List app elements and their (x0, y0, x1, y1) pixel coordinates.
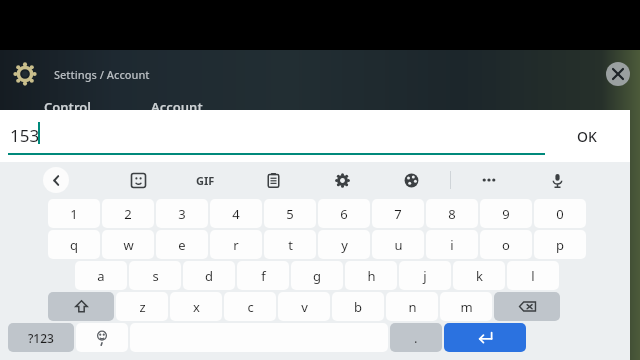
button[interactable]: g (291, 261, 343, 290)
staticText: Control (44, 98, 91, 116)
staticText: i (450, 236, 454, 254)
staticText: n (408, 298, 417, 316)
button[interactable]: y (318, 230, 370, 259)
button[interactable]: h (345, 261, 397, 290)
button[interactable]: m (440, 292, 492, 321)
button[interactable]: j (399, 261, 451, 290)
button[interactable]: n (386, 292, 438, 321)
button[interactable]: z (116, 292, 168, 321)
staticText: GIF (196, 173, 215, 188)
staticText: j (423, 267, 427, 285)
button[interactable]: Enter (444, 323, 526, 352)
button[interactable]: Settings (325, 163, 359, 197)
staticText: u (394, 236, 403, 254)
button[interactable]: 1 (48, 199, 100, 228)
staticText: x (193, 298, 200, 316)
staticText: r (233, 236, 239, 254)
staticText: q (70, 236, 78, 254)
button[interactable]: e (156, 230, 208, 259)
button[interactable]: 3 (156, 199, 208, 228)
staticText: y (341, 236, 348, 254)
staticText: 4 (232, 205, 240, 223)
button[interactable]: 2 (102, 199, 154, 228)
staticText: Settings / Account (54, 67, 150, 82)
staticText: 8 (448, 205, 456, 223)
button[interactable]: s (129, 261, 181, 290)
staticText: p (556, 236, 564, 254)
button[interactable]: o (480, 230, 532, 259)
button[interactable]: Close (606, 62, 630, 86)
staticText: b (354, 298, 362, 316)
staticText: e (178, 236, 186, 254)
staticText: h (367, 267, 376, 285)
staticText: ?123 (28, 330, 54, 346)
staticText: o (502, 236, 510, 254)
button[interactable]: Themes (394, 163, 428, 197)
staticText: w (123, 236, 134, 254)
staticText: m (460, 298, 473, 316)
staticText: 9 (502, 205, 510, 223)
staticText: 3 (178, 205, 186, 223)
button[interactable]: x (170, 292, 222, 321)
staticText: l (531, 267, 535, 285)
staticText: d (205, 267, 213, 285)
button[interactable]: p (534, 230, 586, 259)
staticText: 0 (556, 205, 564, 223)
button[interactable]: 8 (426, 199, 478, 228)
staticText: 6 (340, 205, 348, 223)
button[interactable]: c (224, 292, 276, 321)
button[interactable]: GIF (188, 163, 222, 197)
button[interactable]: Emoji (76, 323, 128, 352)
button[interactable]: i (426, 230, 478, 259)
button[interactable]: d (183, 261, 235, 290)
button[interactable]: Clipboard (256, 163, 290, 197)
button[interactable]: Symbols (8, 323, 74, 352)
staticText: c (247, 298, 254, 316)
button[interactable]: 6 (318, 199, 370, 228)
button[interactable]: Voice input (540, 163, 574, 197)
staticText: v (301, 298, 308, 316)
button[interactable]: OK (558, 116, 616, 156)
staticText: Account (151, 98, 203, 116)
button[interactable]: q (48, 230, 100, 259)
button[interactable]: 0 (534, 199, 586, 228)
button[interactable]: More options (472, 163, 506, 197)
button[interactable]: Stickers (121, 163, 155, 197)
button[interactable]: 7 (372, 199, 424, 228)
staticText: a (97, 267, 105, 285)
button[interactable]: 4 (210, 199, 262, 228)
staticText: 153 (10, 124, 40, 147)
staticText: 5 (286, 205, 294, 223)
button[interactable]: v (278, 292, 330, 321)
staticText: f (261, 267, 266, 285)
button[interactable]: k (453, 261, 505, 290)
staticText: t (288, 236, 293, 254)
button[interactable]: t (264, 230, 316, 259)
staticText: z (139, 298, 146, 316)
button[interactable]: l (507, 261, 559, 290)
staticText: g (313, 267, 321, 285)
button[interactable]: r (210, 230, 262, 259)
staticText: k (476, 267, 483, 285)
button[interactable]: u (372, 230, 424, 259)
staticText: . (414, 329, 418, 347)
staticText: 7 (394, 205, 402, 223)
button[interactable]: f (237, 261, 289, 290)
staticText: 2 (124, 205, 132, 223)
staticText: s (152, 267, 159, 285)
staticText: OK (577, 127, 597, 146)
button[interactable]: Shift (48, 292, 114, 321)
staticText: 1 (70, 205, 78, 223)
button[interactable]: Backspace (494, 292, 560, 321)
button[interactable]: a (75, 261, 127, 290)
button[interactable]: Back (39, 163, 73, 197)
button[interactable]: 9 (480, 199, 532, 228)
button[interactable]: Period (390, 323, 442, 352)
button[interactable]: b (332, 292, 384, 321)
button[interactable]: 5 (264, 199, 316, 228)
button[interactable]: w (102, 230, 154, 259)
